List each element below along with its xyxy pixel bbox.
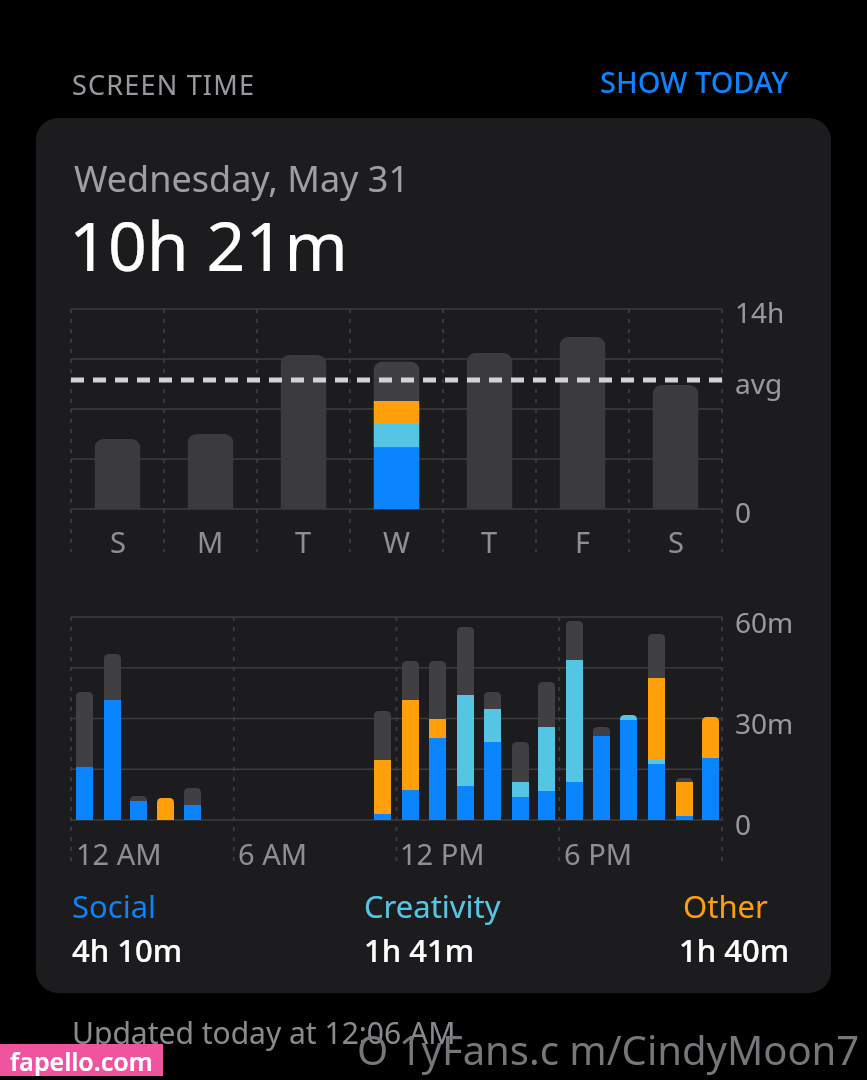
staticText: 10h 21m <box>69 198 348 291</box>
staticText: Wednesday, May 31 <box>74 154 410 203</box>
staticText: Creativity <box>364 885 501 927</box>
staticText: Social <box>72 885 157 927</box>
staticText: SCREEN TIME <box>72 66 256 103</box>
staticText: SHOW TODAY <box>600 62 789 101</box>
staticText: 60m <box>735 603 794 641</box>
staticText: S <box>668 522 684 556</box>
staticText: Updated today at 12:06 AM <box>72 1012 456 1053</box>
staticText: 14h <box>735 293 785 331</box>
staticText: 0 <box>735 805 752 843</box>
staticText: T <box>481 522 498 556</box>
button[interactable]: fapello.com <box>0 1044 163 1076</box>
staticText: M <box>197 522 224 556</box>
staticText: 6 AM <box>238 834 307 873</box>
staticText: 30m <box>735 704 794 742</box>
staticText: fapello.com <box>10 1044 153 1076</box>
staticText: avg <box>735 364 783 402</box>
staticText: 0 <box>735 493 752 531</box>
staticText: 1h 40m <box>679 929 790 971</box>
staticText: W <box>383 522 410 556</box>
staticText: 12 AM <box>76 834 162 873</box>
staticText: 6 PM <box>564 834 632 873</box>
staticText: O 1yFans.c m/CindyMoon7 <box>357 1022 860 1076</box>
button[interactable]: SHOW TODAY <box>600 62 789 101</box>
staticText: T <box>295 522 312 556</box>
button[interactable] <box>36 118 831 993</box>
staticText: Other <box>683 885 768 927</box>
staticText: F <box>575 522 591 556</box>
staticText: 12 PM <box>400 834 485 873</box>
staticText: 1h 41m <box>364 929 475 971</box>
staticText: S <box>110 522 126 556</box>
staticText: 4h 10m <box>72 929 183 971</box>
